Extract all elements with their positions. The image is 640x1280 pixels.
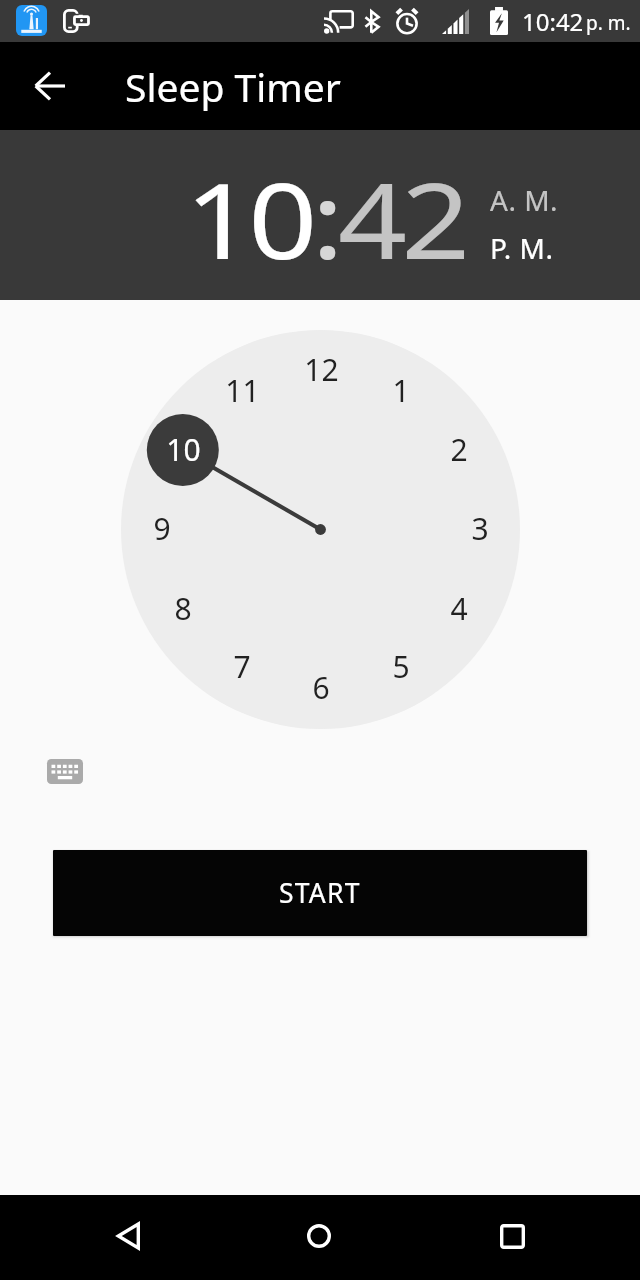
button[interactable]: P. M. <box>484 225 560 271</box>
staticText: A. M. <box>490 181 559 219</box>
button[interactable]: 12 <box>293 341 349 397</box>
button[interactable]: Back <box>20 56 80 116</box>
button[interactable]: Switch to keyboard input <box>47 759 83 784</box>
staticText: 8 <box>174 588 192 629</box>
staticText: Sleep Timer <box>125 60 341 113</box>
staticText: START <box>279 875 361 911</box>
staticText: 1 <box>392 370 410 411</box>
staticText: 4 <box>450 588 468 629</box>
button[interactable]: 1 <box>373 362 429 418</box>
button[interactable]: 5 <box>373 638 429 694</box>
staticText: 3 <box>471 508 489 549</box>
button[interactable]: Home <box>279 1196 359 1276</box>
staticText: 11 <box>225 370 260 411</box>
button[interactable]: 42 <box>338 148 464 290</box>
button[interactable]: 7 <box>214 638 270 694</box>
staticText: 7 <box>233 646 251 687</box>
staticText: 9 <box>153 508 171 549</box>
button[interactable]: 10 <box>155 421 211 477</box>
button[interactable]: 9 <box>134 500 190 556</box>
button[interactable]: 4 <box>431 580 487 636</box>
button[interactable]: 3 <box>452 500 508 556</box>
staticText: 10:42 <box>522 5 584 38</box>
button[interactable]: 6 <box>293 659 349 715</box>
staticText: 5 <box>392 646 410 687</box>
button[interactable]: Back <box>88 1196 168 1276</box>
button[interactable]: 11 <box>214 362 270 418</box>
staticText: 10 <box>166 429 201 470</box>
staticText: 6 <box>312 667 330 708</box>
button[interactable]: 8 <box>155 580 211 636</box>
staticText: p. m. <box>586 10 631 36</box>
staticText: 2 <box>450 429 468 470</box>
staticText: : <box>311 148 338 290</box>
button[interactable]: 2 <box>431 421 487 477</box>
button[interactable]: START <box>53 850 587 936</box>
button[interactable]: 10 <box>185 148 311 290</box>
staticText: 12 <box>304 349 339 390</box>
staticText: P. M. <box>490 229 554 267</box>
button[interactable]: Recent apps <box>472 1196 552 1276</box>
button[interactable]: A. M. <box>484 177 565 223</box>
